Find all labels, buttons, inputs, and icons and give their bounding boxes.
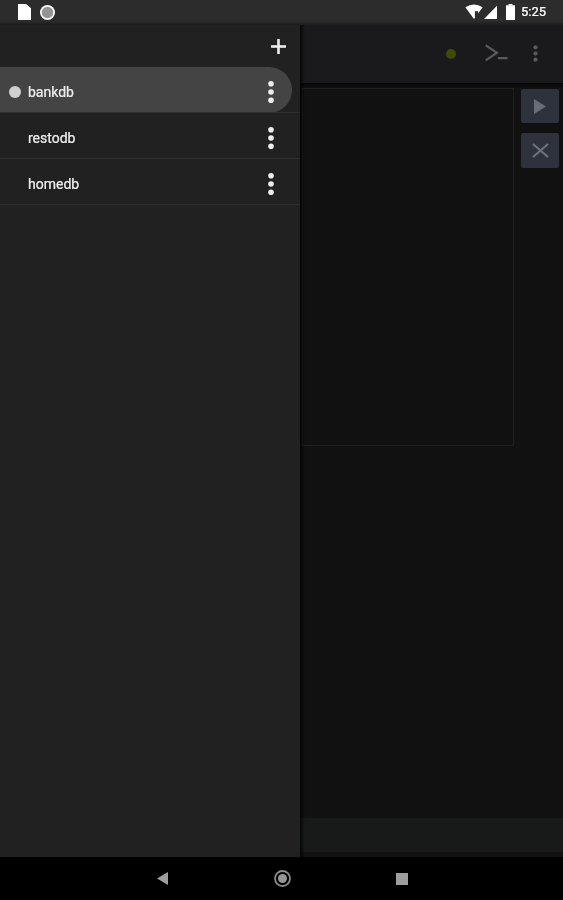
button[interactable]: Recent apps [378,857,426,900]
button[interactable]: More options [519,37,551,69]
button[interactable]: Options for homedb [252,159,289,205]
staticText: 5:25 [521,4,547,19]
button[interactable]: Add database [258,26,298,66]
button[interactable]: Run query [521,89,559,123]
button[interactable]: bankdb [0,67,300,113]
button[interactable]: Options for bankdb [252,67,289,113]
button[interactable]: Clear query [521,133,559,168]
staticText: homedb [28,176,80,192]
button[interactable]: homedb [0,159,300,205]
staticText: restodb [28,130,76,146]
staticText: bankdb [28,84,74,100]
button[interactable]: Home [258,857,306,900]
button[interactable]: Back [138,857,186,900]
button[interactable]: Console [480,36,513,69]
button[interactable]: restodb [0,113,300,159]
button[interactable]: Connection status [435,38,466,69]
button[interactable]: Options for restodb [252,113,289,159]
